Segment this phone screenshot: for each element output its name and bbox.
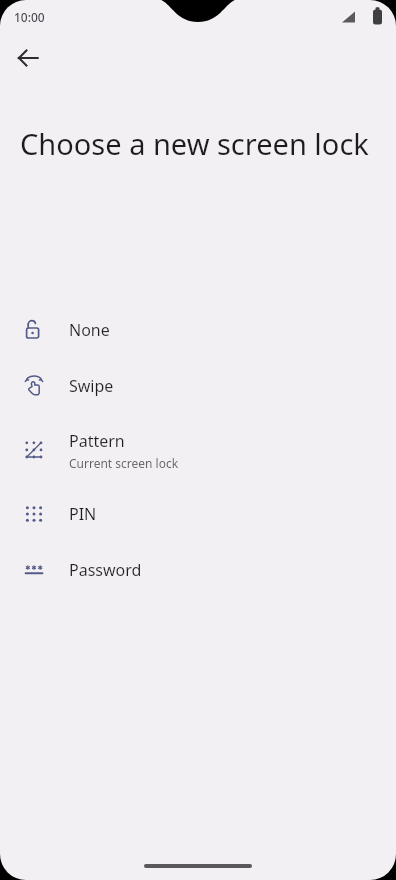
button[interactable]: Swipe <box>0 358 396 414</box>
staticText: Swipe <box>69 375 114 397</box>
staticText: 10:00 <box>14 9 45 25</box>
staticText: Current screen lock <box>69 455 179 471</box>
button[interactable]: None <box>0 302 396 358</box>
staticText: Choose a new screen lock <box>20 124 369 163</box>
button[interactable]: PIN <box>0 486 396 542</box>
button[interactable]: Password <box>0 542 396 598</box>
button[interactable]: Pattern <box>0 414 396 486</box>
staticText: Password <box>69 559 142 581</box>
staticText: PIN <box>69 503 97 525</box>
button[interactable]: Back <box>8 38 48 78</box>
staticText: None <box>69 319 110 341</box>
staticText: Pattern <box>69 430 125 452</box>
